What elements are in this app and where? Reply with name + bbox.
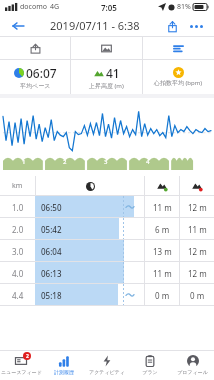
staticText: 4.4: [12, 290, 24, 301]
staticText: 11 m: [153, 202, 172, 213]
button[interactable]: Route map: [0, 37, 70, 59]
staticText: 平均ペース: [20, 82, 51, 90]
button[interactable]: 計測履歴: [42, 350, 85, 380]
staticText: 11 m: [188, 224, 207, 235]
staticText: 05:42: [41, 224, 62, 235]
button[interactable]: プロフィール: [171, 350, 214, 380]
staticText: 13 m: [153, 246, 172, 257]
staticText: 2: [63, 158, 67, 166]
staticText: docomo: [20, 2, 47, 12]
button[interactable]: 41: [71, 60, 142, 94]
staticText: 0 m: [155, 290, 170, 301]
staticText: 7:05: [101, 2, 117, 13]
staticText: 06:07: [26, 65, 57, 81]
staticText: 3: [104, 158, 108, 166]
staticText: 計測履歴: [54, 369, 74, 375]
staticText: 3.0: [12, 246, 24, 257]
staticText: 2.0: [12, 224, 24, 235]
button[interactable]: プラン: [128, 350, 171, 380]
staticText: プロフィール: [177, 369, 208, 375]
staticText: 1.0: [12, 202, 24, 213]
staticText: ニュースフィード: [1, 369, 42, 375]
staticText: 2019/07/11 - 6:38: [50, 18, 140, 33]
button[interactable]: Back: [8, 16, 28, 36]
staticText: 1: [22, 158, 26, 166]
button[interactable]: アクティビティ: [85, 350, 128, 380]
staticText: 06:04: [41, 246, 62, 257]
staticText: 2: [26, 353, 29, 360]
button[interactable]: 3.0: [0, 240, 214, 262]
staticText: 06:50: [41, 202, 62, 213]
staticText: 12 m: [188, 268, 207, 279]
staticText: 上昇高度 (m): [89, 82, 124, 90]
staticText: 41: [106, 65, 120, 81]
staticText: km: [12, 181, 23, 191]
staticText: 12 m: [188, 246, 207, 257]
button[interactable]: 4.0: [0, 262, 214, 284]
button[interactable]: Photos: [71, 37, 142, 59]
staticText: 4G: [50, 2, 60, 12]
staticText: 06:13: [41, 268, 62, 279]
staticText: 11 m: [153, 268, 172, 279]
staticText: 12 m: [188, 202, 207, 213]
staticText: 6 m: [155, 224, 170, 235]
button[interactable]: 2: [0, 350, 42, 380]
button[interactable]: 1.0: [0, 196, 214, 218]
staticText: 心拍数平均 (bpm): [154, 79, 203, 87]
staticText: アクティビティ: [89, 369, 125, 375]
staticText: プラン: [142, 369, 158, 375]
button[interactable]: Share: [162, 16, 182, 36]
staticText: 81%: [177, 2, 191, 12]
button[interactable]: 2.0: [0, 218, 214, 240]
button[interactable]: 06:07: [0, 60, 70, 94]
staticText: 0 m: [190, 290, 205, 301]
staticText: 05:18: [41, 290, 62, 301]
button[interactable]: More options: [186, 16, 206, 36]
button[interactable]: 心拍数平均 (bpm): [143, 60, 214, 94]
staticText: 4: [146, 158, 150, 166]
button[interactable]: Splits: [143, 37, 214, 59]
button[interactable]: 4.4: [0, 284, 214, 306]
staticText: 4.0: [12, 268, 24, 279]
